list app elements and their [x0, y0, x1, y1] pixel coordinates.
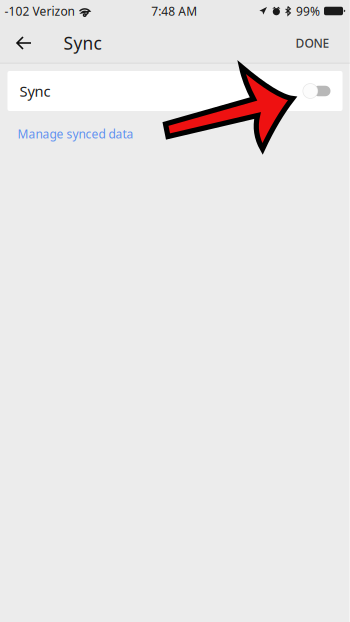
button[interactable]: Manage synced data	[17, 126, 133, 142]
staticText: Sync	[63, 31, 101, 54]
staticText: 99%	[296, 3, 320, 19]
button[interactable]: Sync	[7, 71, 342, 111]
staticText: Manage synced data	[17, 126, 133, 142]
button[interactable]: Back	[0, 22, 48, 64]
staticText: Sync	[19, 81, 50, 101]
button[interactable]: DONE	[281, 22, 349, 64]
staticText: -102 Verizon	[4, 3, 74, 19]
staticText: 7:48 AM	[151, 3, 197, 19]
staticText: DONE	[295, 35, 329, 51]
